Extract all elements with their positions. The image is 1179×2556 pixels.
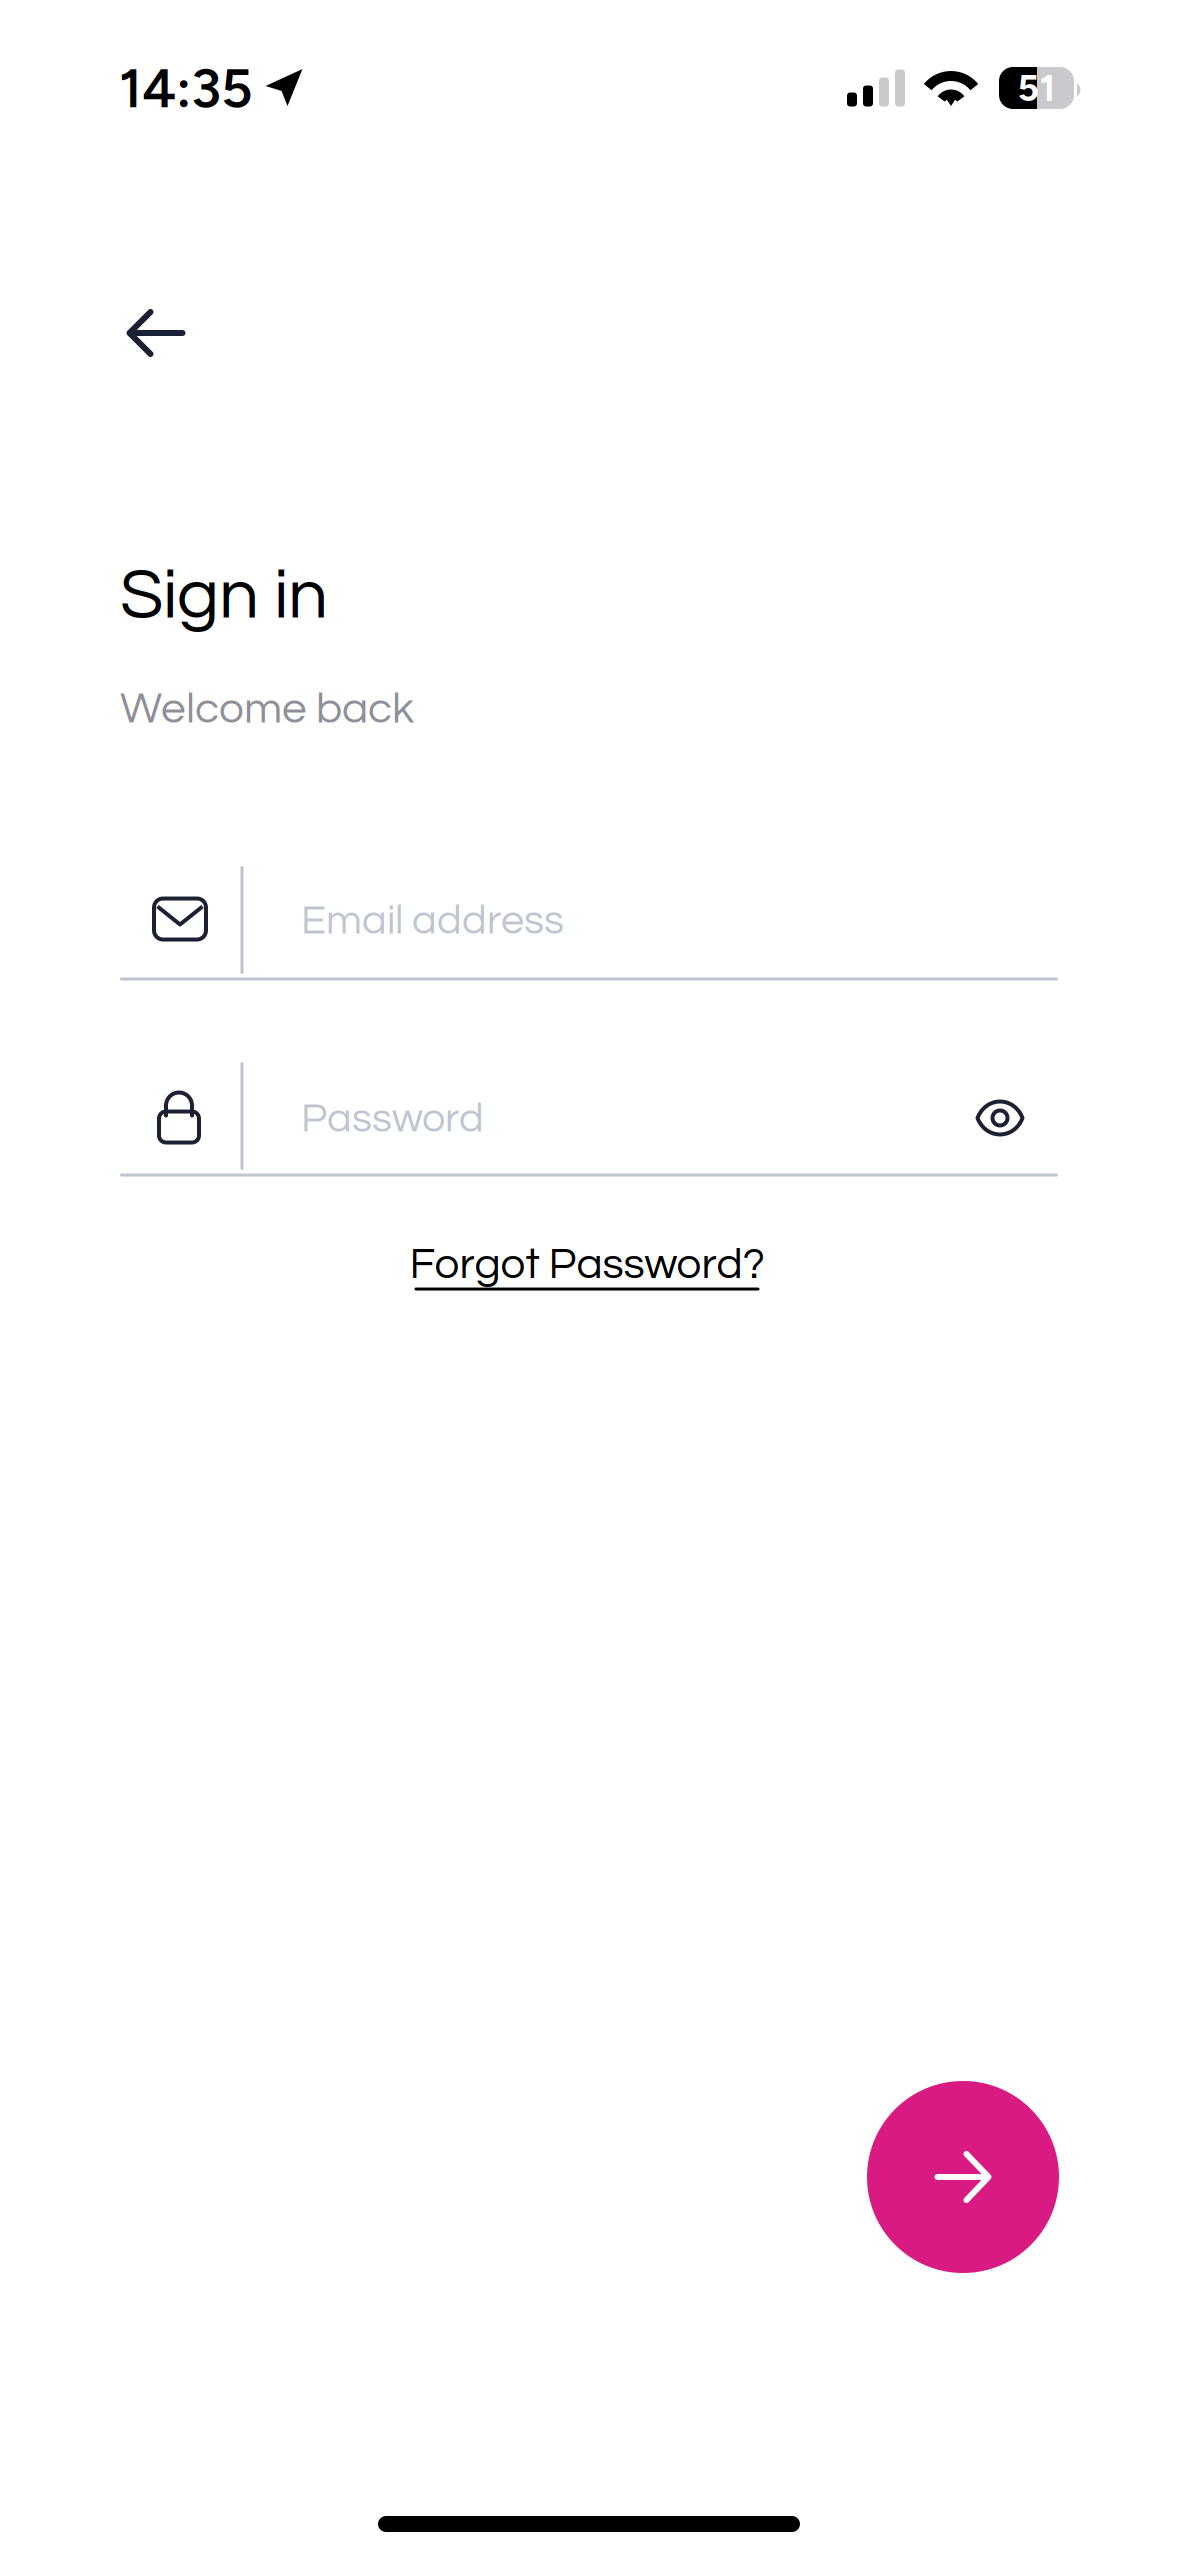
staticText: Welcome back [120,686,414,732]
staticText: Forgot Password? [409,1242,764,1287]
staticText: Email address [301,900,564,942]
button[interactable]: Back [95,276,216,390]
button[interactable]: Forgot Password? [355,1227,819,1304]
button[interactable]: Password [120,1060,940,1174]
button[interactable]: Email address [120,864,1058,978]
button[interactable]: Continue [867,2081,1059,2273]
staticText: Sign in [120,560,328,632]
staticText: 14:35 [119,55,253,121]
button[interactable]: Show password [955,1079,1045,1157]
staticText: Password [301,1098,484,1140]
staticText: 51 [1017,66,1055,110]
